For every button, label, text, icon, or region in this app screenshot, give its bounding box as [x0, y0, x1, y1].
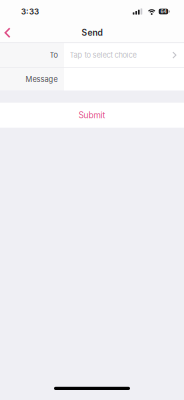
staticText: 3:33: [21, 7, 39, 16]
staticText: Tap to select choice: [69, 51, 136, 60]
staticText: Message: [25, 75, 57, 84]
staticText: Send: [81, 28, 102, 38]
button[interactable]: Message: [0, 68, 184, 91]
button[interactable]: Back: [0, 24, 17, 41]
staticText: 64: [160, 8, 166, 14]
staticText: To: [49, 51, 57, 60]
staticText: Submit: [78, 110, 105, 120]
button[interactable]: To: [0, 43, 184, 67]
button[interactable]: Submit: [0, 103, 184, 128]
